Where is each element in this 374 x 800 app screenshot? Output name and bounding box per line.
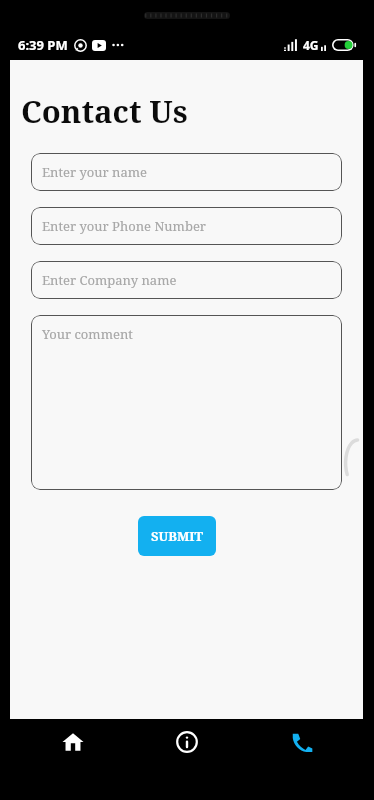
staticText: Your comment: [42, 325, 133, 343]
button[interactable]: SUBMIT: [138, 516, 216, 556]
button[interactable]: Enter your Phone Number: [31, 207, 342, 245]
staticText: Contact Us: [21, 90, 188, 132]
button[interactable]: Your comment: [31, 315, 342, 490]
button[interactable]: Home: [0, 723, 145, 761]
button[interactable]: Enter Company name: [31, 261, 342, 299]
button[interactable]: Info: [145, 723, 229, 761]
staticText: SUBMIT: [151, 527, 204, 545]
staticText: Enter your name: [42, 163, 148, 181]
staticText: Enter your Phone Number: [42, 217, 206, 235]
staticText: 4G: [303, 37, 319, 53]
staticText: Enter Company name: [42, 271, 177, 289]
button[interactable]: Call: [229, 723, 374, 761]
button[interactable]: Enter your name: [31, 153, 342, 191]
staticText: 6:39 PM: [18, 36, 68, 54]
